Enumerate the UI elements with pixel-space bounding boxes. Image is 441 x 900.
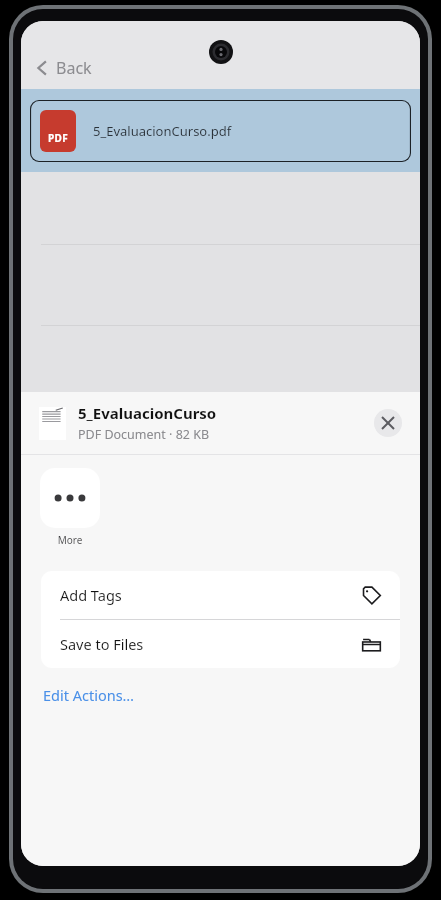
staticText: 5_EvaluacionCurso (78, 403, 217, 423)
staticText: Save to Files (60, 634, 361, 654)
button[interactable]: Save to Files (41, 620, 400, 668)
button[interactable]: Close (374, 409, 402, 437)
staticText: Edit Actions… (43, 685, 135, 705)
button[interactable]: Edit Actions… (41, 681, 137, 709)
staticText: PDF Document · 82 KB (78, 426, 210, 443)
staticText: PDF (48, 131, 69, 145)
staticText: Back (56, 57, 92, 79)
staticText: Add Tags (60, 585, 361, 605)
button[interactable]: More (40, 468, 100, 528)
button[interactable]: PDF (30, 100, 411, 162)
staticText: 5_EvaluacionCurso.pdf (93, 122, 232, 140)
staticText: More (40, 533, 100, 547)
button[interactable]: Back (29, 53, 98, 83)
button[interactable]: Add Tags (41, 571, 400, 619)
